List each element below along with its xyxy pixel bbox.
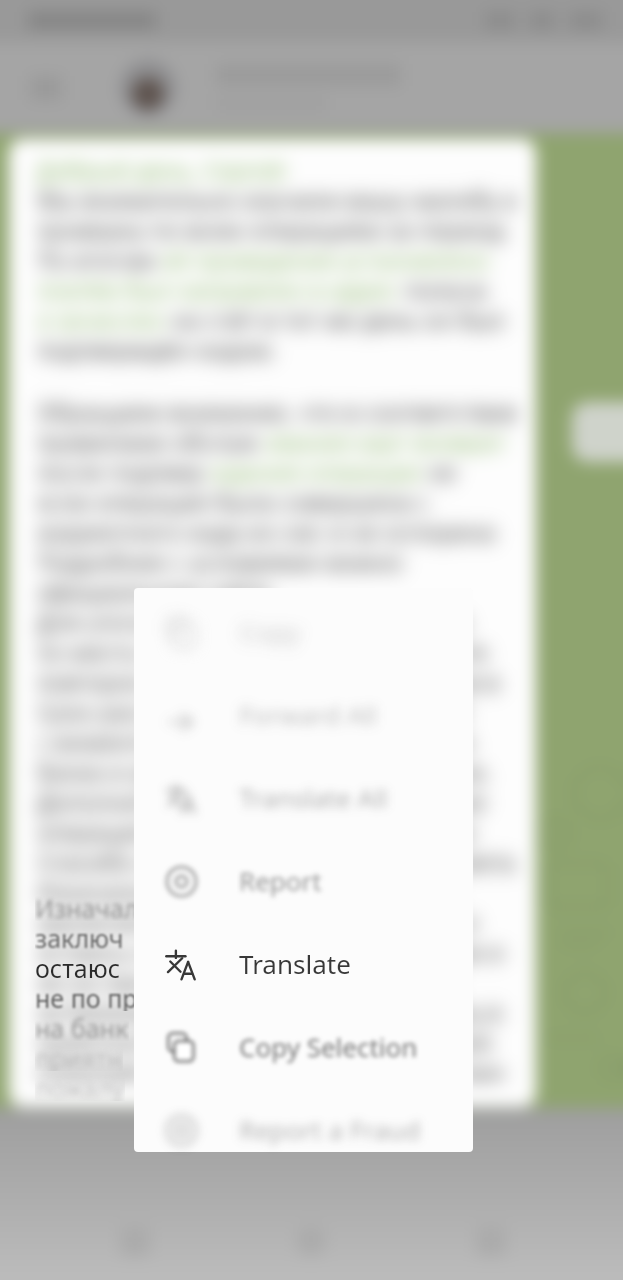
staticText: Copy xyxy=(239,614,300,649)
staticText: пожалу xyxy=(35,1071,125,1101)
staticText: ивания карт возврат xyxy=(265,425,506,455)
button[interactable]: Translate All xyxy=(134,756,473,839)
staticText: Добрый день, Сергей xyxy=(35,153,285,183)
staticText: Обращаем внимание, что в соответствии с … xyxy=(35,395,521,425)
button[interactable]: Copy Selection xyxy=(134,1005,473,1088)
staticText: Copy Selection xyxy=(239,1029,418,1064)
staticText: с момента регистрации обращения в систем… xyxy=(35,725,521,755)
button[interactable]: Report xyxy=(134,839,473,922)
staticText: Подробнее с условиями можно ознакомиться… xyxy=(35,545,521,575)
staticText: не по просьбе клиента переводы не отменя… xyxy=(35,965,521,995)
staticText: повторно с приложением документов в чате xyxy=(35,665,521,695)
staticText: операция подтверждена корректным кодом и… xyxy=(35,815,521,845)
staticText: Мы внимательно изучили вашу жалобу и про… xyxy=(35,183,521,213)
staticText: Спасибо за обращение, ожидайте ответа. xyxy=(35,845,521,875)
button[interactable]: Translate xyxy=(134,922,473,1005)
staticText: не по пр xyxy=(35,981,138,1011)
button[interactable]: Scroll to bottom xyxy=(572,402,623,462)
button[interactable]: Report a Fraud xyxy=(134,1088,473,1171)
staticText: банка и уведомления клиента об этом. xyxy=(35,755,491,785)
staticText: По итогам xyxy=(35,243,162,273)
staticText: остаюс xyxy=(35,951,121,981)
staticText: её проведения установлено xyxy=(162,243,489,273)
staticText: заключ xyxy=(35,921,124,951)
staticText: на банк xyxy=(35,1011,129,1041)
staticText: Forward All xyxy=(239,697,377,732)
staticText: Translate xyxy=(239,946,351,981)
button[interactable]: Forward All xyxy=(134,673,473,756)
staticText: приятн xyxy=(35,1041,123,1071)
staticText: Изначал xyxy=(35,891,139,921)
staticText: Report a Fraud xyxy=(239,1112,421,1147)
staticText: Дополнительно сообщаем следующее что опе… xyxy=(35,785,521,815)
staticText: официальном сайте. xyxy=(35,575,277,605)
staticText: остаюсь на связи по любым вопросам и есл… xyxy=(35,935,521,965)
staticText: правилами обслуж xyxy=(35,425,265,455)
staticText: платёж был направлен в адрес xyxy=(35,273,398,303)
staticText: не xyxy=(422,455,457,485)
staticText: по месту обслуживания или напишите нам xyxy=(35,635,521,665)
staticText: получа xyxy=(398,273,487,303)
staticText: Для уточнения деталей обратитесь в отдел… xyxy=(35,605,521,635)
button[interactable] xyxy=(120,60,176,116)
staticText: пожалуйста ожидайте ответа оператора xyxy=(35,1055,504,1085)
staticText: Изначально, в момент оформления договора xyxy=(35,875,521,905)
staticText: ждения операции xyxy=(211,455,422,485)
staticText: Translate All xyxy=(239,780,388,815)
staticText: на счёт в тот же день он был xyxy=(165,303,505,333)
staticText: после подтвер xyxy=(35,455,211,485)
staticText: и зачислен xyxy=(35,303,165,333)
staticText: Report xyxy=(239,863,322,898)
staticText: заключено соглашение об условиях и тариф… xyxy=(35,905,521,935)
staticText: подтверждён кодом. xyxy=(35,333,277,363)
staticText: Срок рассмотрения составляет до 30 рабоч… xyxy=(35,695,521,725)
staticText: приятного дня и хорошего настроения вам xyxy=(35,1025,521,1055)
staticText: на банковские реквизиты третьих лиц в ср… xyxy=(35,995,521,1025)
staticText: корректного кода из смс и не оспорена xyxy=(35,515,496,545)
staticText: если операция была совершена с вводом ко xyxy=(35,485,521,515)
staticText: проверку по всем операциям за период с м… xyxy=(35,213,521,243)
